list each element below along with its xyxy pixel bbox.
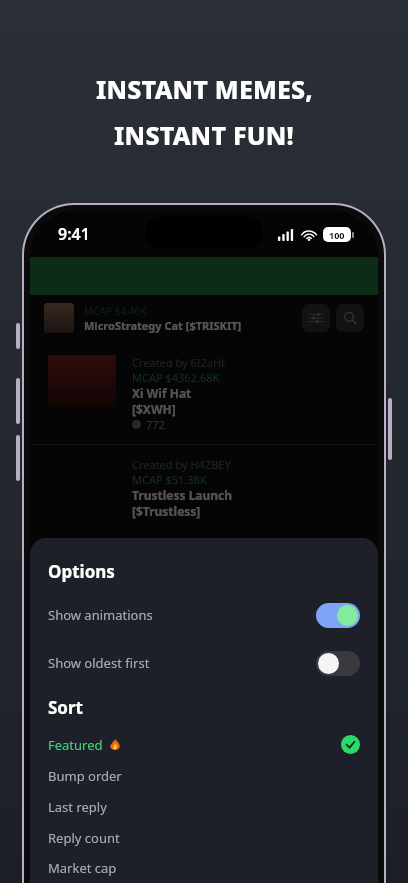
staticText: MCAP $51.38K bbox=[132, 472, 207, 487]
staticText: 9:41 bbox=[58, 223, 90, 245]
staticText: Reply count bbox=[48, 829, 120, 847]
button[interactable]: Bump order bbox=[48, 760, 360, 791]
button[interactable]: Show animations bbox=[48, 598, 360, 632]
staticText: INSTANT MEMES, bbox=[96, 72, 313, 106]
staticText: Sort bbox=[48, 696, 83, 719]
button[interactable]: Featured bbox=[48, 729, 360, 760]
staticText: Show oldest first bbox=[48, 654, 316, 672]
staticText: 100 bbox=[329, 229, 345, 241]
staticText: Created by H4ZBEY bbox=[132, 457, 231, 472]
staticText: Bump order bbox=[48, 767, 122, 785]
staticText: Featured bbox=[48, 736, 103, 754]
staticText: 772 bbox=[146, 417, 165, 432]
staticText: [$XWH] bbox=[132, 401, 176, 417]
staticText: Last reply bbox=[48, 798, 107, 816]
staticText: Trustless Launch bbox=[132, 487, 233, 503]
button[interactable]: MCAP $4.46K bbox=[30, 295, 378, 341]
button[interactable]: Reply count bbox=[48, 822, 360, 853]
button[interactable]: Created by H4ZBEY bbox=[30, 457, 378, 519]
staticText: Show animations bbox=[48, 606, 316, 624]
staticText: MicroStrategy Cat [$TRISKIT] bbox=[84, 318, 242, 333]
staticText: [$Trustless] bbox=[132, 503, 201, 519]
staticText: INSTANT FUN! bbox=[114, 118, 294, 152]
staticText: Options bbox=[48, 560, 115, 583]
staticText: Xi Wif Hat bbox=[132, 385, 192, 401]
staticText: MCAP $4.46K bbox=[84, 304, 147, 318]
staticText: Created by 6I2aHt bbox=[132, 355, 226, 370]
button[interactable]: Created by 6I2aHt bbox=[30, 341, 378, 432]
button[interactable]: Search bbox=[336, 304, 364, 332]
staticText: MCAP $4362.68K bbox=[132, 370, 220, 385]
button[interactable]: Market cap bbox=[48, 853, 360, 883]
staticText: Market cap bbox=[48, 859, 117, 877]
button[interactable]: Filter bbox=[302, 304, 330, 332]
button[interactable]: Last reply bbox=[48, 791, 360, 822]
button[interactable]: Show oldest first bbox=[48, 646, 360, 680]
